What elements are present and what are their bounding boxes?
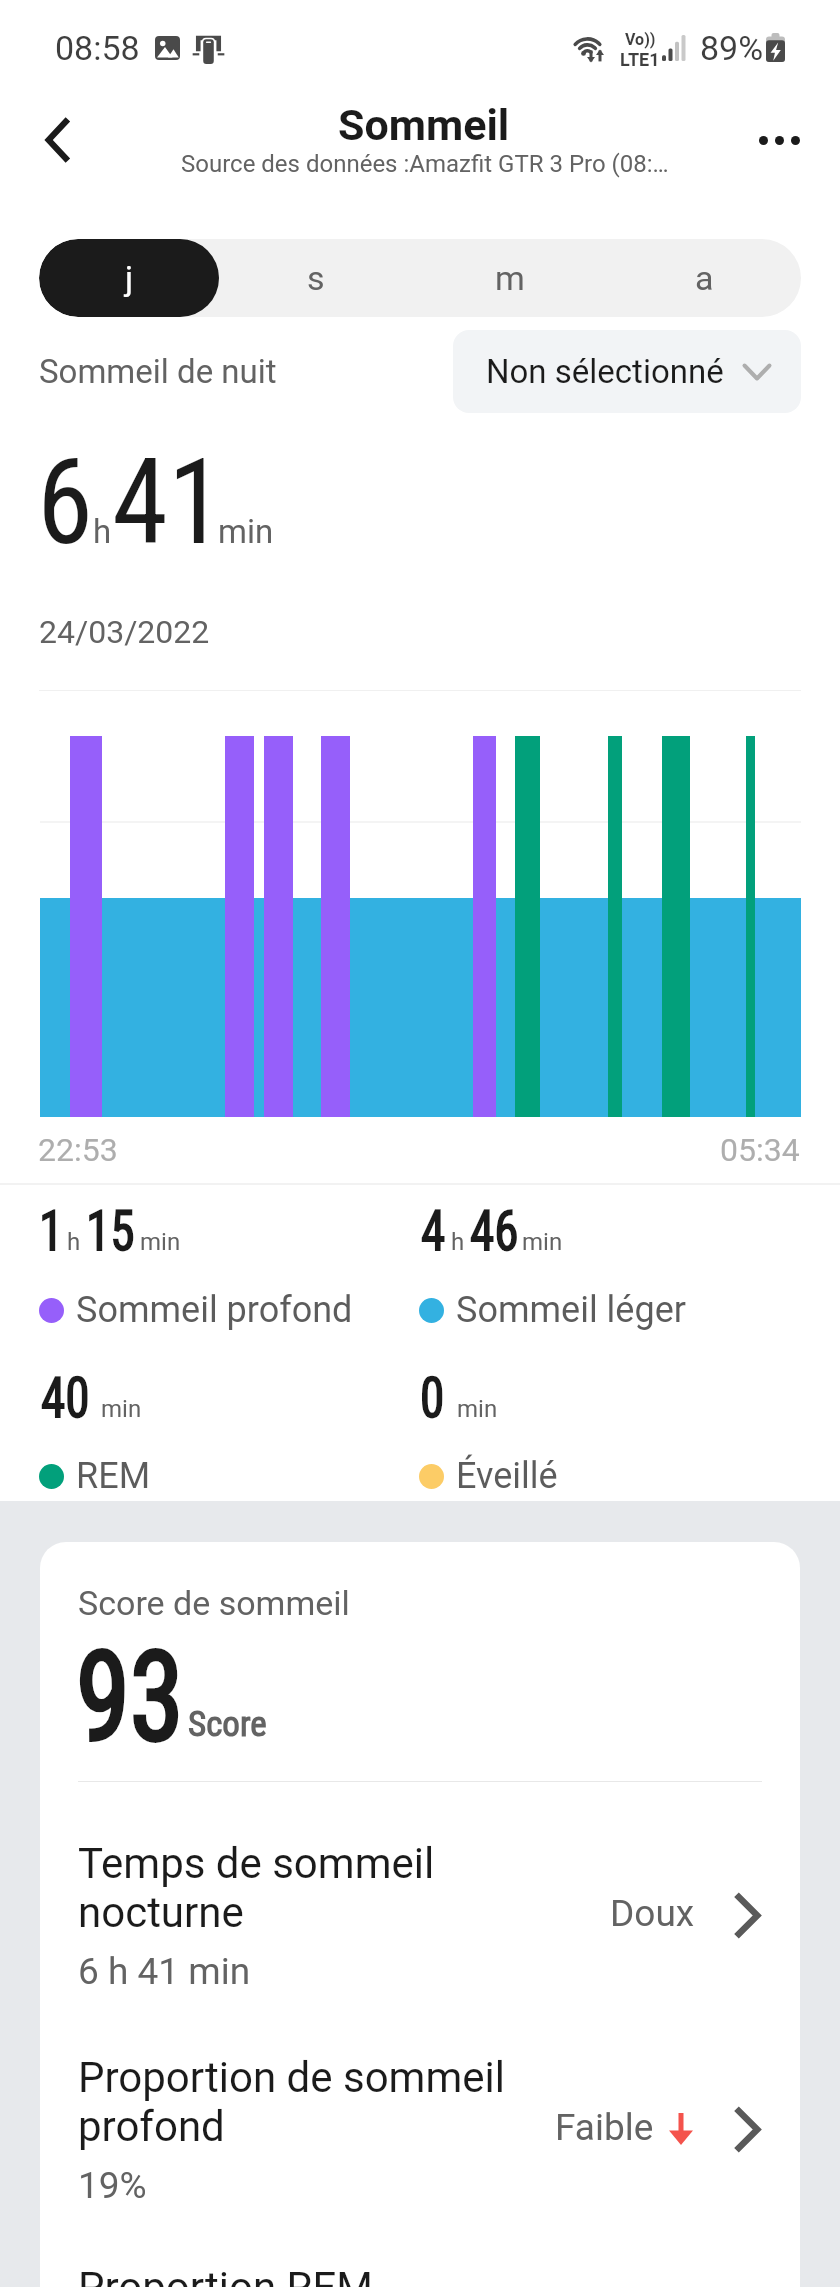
staticText: Vo)): [625, 30, 656, 49]
staticText: h: [67, 1228, 81, 1256]
staticText: Non sélectionné: [486, 352, 724, 391]
button[interactable]: Temps de sommeil: [40, 1817, 800, 1983]
staticText: 05:34: [720, 1131, 800, 1169]
staticText: Score de sommeil: [78, 1583, 350, 1623]
staticText: 6: [37, 434, 94, 572]
staticText: 40: [41, 1365, 90, 1431]
button[interactable]: a: [607, 239, 801, 317]
staticText: min: [457, 1395, 498, 1423]
staticText: Doux: [610, 1892, 695, 1935]
staticText: Source des données :Amazfit GTR 3 Pro (0…: [181, 150, 669, 178]
staticText: Sommeil: [338, 100, 510, 150]
staticText: REM: [76, 1455, 151, 1497]
staticText: 24/03/2022: [39, 613, 210, 651]
button[interactable]: s: [219, 239, 413, 317]
button[interactable]: m: [413, 239, 607, 317]
staticText: 22:53: [38, 1131, 118, 1169]
staticText: 4: [421, 1198, 446, 1264]
staticText: 15: [86, 1198, 135, 1264]
staticText: Sommeil de nuit: [39, 352, 277, 391]
staticText: min: [101, 1395, 142, 1423]
staticText: 6 h 41 min: [78, 1950, 251, 1993]
staticText: Temps de sommeil: [78, 1839, 435, 1888]
staticText: 0: [420, 1365, 445, 1431]
staticText: 19%: [78, 2164, 147, 2207]
staticText: 93: [76, 1625, 184, 1770]
staticText: j: [125, 258, 134, 298]
staticText: min: [140, 1228, 181, 1256]
staticText: s: [307, 258, 325, 298]
staticText: min: [522, 1228, 563, 1256]
staticText: Sommeil profond: [76, 1289, 353, 1331]
staticText: Score: [188, 1704, 267, 1745]
staticText: profond: [78, 2102, 225, 2151]
staticText: h: [93, 512, 112, 551]
button[interactable]: Éveillé: [419, 1454, 558, 1498]
staticText: Sommeil léger: [456, 1289, 686, 1331]
button[interactable]: Sommeil léger: [419, 1288, 686, 1332]
staticText: Proportion REM: [78, 2263, 374, 2287]
staticText: m: [495, 258, 525, 298]
button[interactable]: More options: [739, 100, 819, 180]
button[interactable]: REM: [39, 1454, 151, 1498]
staticText: 89%: [700, 28, 764, 68]
other: Open details: [731, 1892, 761, 1938]
staticText: Éveillé: [456, 1455, 558, 1497]
staticText: a: [695, 258, 714, 298]
button[interactable]: Back: [18, 100, 98, 180]
staticText: 1: [39, 1198, 64, 1264]
staticText: h: [451, 1228, 465, 1256]
staticText: Proportion de sommeil: [78, 2053, 505, 2102]
staticText: min: [218, 512, 274, 551]
staticText: 46: [470, 1198, 519, 1264]
staticText: 41: [112, 434, 224, 572]
staticText: LTE1: [620, 49, 660, 70]
button[interactable]: Non sélectionné: [453, 330, 801, 413]
button[interactable]: j: [39, 239, 219, 317]
button[interactable]: Sommeil profond: [39, 1288, 353, 1332]
button[interactable]: Proportion de sommeil: [40, 2031, 800, 2197]
other: Open details: [731, 2106, 761, 2152]
staticText: nocturne: [78, 1888, 244, 1937]
staticText: Faible: [555, 2106, 654, 2149]
staticText: 08:58: [55, 28, 140, 68]
